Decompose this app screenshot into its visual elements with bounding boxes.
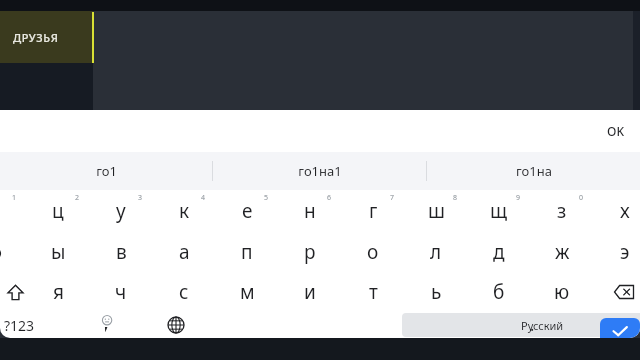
- button[interactable]: ш: [410, 190, 462, 232]
- staticText: го1на: [516, 162, 552, 180]
- staticText: 8: [453, 193, 458, 203]
- staticText: OK: [607, 123, 624, 139]
- staticText: ц: [52, 198, 64, 224]
- button[interactable]: ь: [410, 272, 462, 312]
- staticText: с: [179, 279, 189, 305]
- staticText: 3: [138, 193, 143, 203]
- button[interactable]: го1на1: [213, 152, 426, 190]
- button[interactable]: ы: [32, 232, 84, 272]
- staticText: ч: [115, 279, 127, 305]
- button[interactable]: о: [347, 232, 399, 272]
- button[interactable]: Shift: [0, 272, 36, 312]
- button[interactable]: д: [473, 232, 525, 272]
- button[interactable]: ф: [0, 232, 21, 272]
- staticText: ш: [428, 198, 445, 224]
- button[interactable]: я: [32, 272, 84, 312]
- staticText: го1на1: [298, 162, 342, 180]
- button[interactable]: х: [599, 190, 640, 232]
- staticText: а: [179, 239, 190, 265]
- button[interactable]: Русский: [402, 313, 640, 337]
- button[interactable]: т: [347, 272, 399, 312]
- button[interactable]: н: [284, 190, 336, 232]
- staticText: р: [304, 239, 316, 265]
- staticText: ж: [555, 239, 570, 265]
- button[interactable]: з: [536, 190, 588, 232]
- staticText: щ: [490, 198, 508, 224]
- staticText: ю: [554, 279, 570, 305]
- button[interactable]: е: [221, 190, 273, 232]
- staticText: го1: [96, 162, 117, 180]
- button[interactable]: п: [221, 232, 273, 272]
- button[interactable]: к: [158, 190, 210, 232]
- button[interactable]: ДРУЗЬЯ: [0, 11, 93, 63]
- staticText: 0: [579, 193, 584, 203]
- staticText: 1: [12, 193, 17, 203]
- button[interactable]: Comma and emoji: [86, 312, 126, 338]
- staticText: м: [240, 279, 255, 305]
- staticText: 2: [75, 193, 80, 203]
- staticText: 4: [201, 193, 206, 203]
- staticText: н: [304, 198, 316, 224]
- button[interactable]: м: [221, 272, 273, 312]
- staticText: з: [557, 198, 567, 224]
- staticText: я: [53, 279, 64, 305]
- staticText: т: [369, 279, 378, 305]
- staticText: Русский: [521, 318, 564, 333]
- button[interactable]: го1: [0, 152, 212, 190]
- staticText: в: [116, 239, 127, 265]
- button[interactable]: OK: [599, 117, 632, 145]
- staticText: ы: [51, 239, 66, 265]
- staticText: о: [367, 239, 379, 265]
- staticText: к: [179, 198, 190, 224]
- button[interactable]: и: [284, 272, 336, 312]
- button[interactable]: в: [95, 232, 147, 272]
- staticText: л: [430, 239, 442, 265]
- button[interactable]: ж: [536, 232, 588, 272]
- staticText: п: [241, 239, 253, 265]
- button[interactable]: го1на: [427, 152, 640, 190]
- staticText: ь: [431, 279, 442, 305]
- button[interactable]: ю: [536, 272, 588, 312]
- button[interactable]: щ: [473, 190, 525, 232]
- staticText: ДРУЗЬЯ: [13, 30, 59, 45]
- button[interactable]: с: [158, 272, 210, 312]
- staticText: г: [369, 198, 378, 224]
- button[interactable]: р: [284, 232, 336, 272]
- staticText: ф: [0, 239, 3, 265]
- button[interactable]: у: [95, 190, 147, 232]
- staticText: 6: [327, 193, 332, 203]
- button[interactable]: ц: [32, 190, 84, 232]
- staticText: .: [530, 314, 535, 336]
- button[interactable]: ?123: [0, 312, 48, 338]
- staticText: б: [493, 279, 505, 305]
- button[interactable]: л: [410, 232, 462, 272]
- staticText: х: [620, 198, 630, 224]
- staticText: и: [304, 279, 316, 305]
- button[interactable]: Backspace: [602, 272, 640, 312]
- staticText: 5: [264, 193, 269, 203]
- staticText: у: [116, 198, 126, 224]
- staticText: 9: [516, 193, 521, 203]
- staticText: е: [242, 198, 253, 224]
- button[interactable]: э: [599, 232, 640, 272]
- button[interactable]: ч: [95, 272, 147, 312]
- button[interactable]: б: [473, 272, 525, 312]
- button[interactable]: .: [512, 312, 552, 338]
- button[interactable]: г: [347, 190, 399, 232]
- staticText: э: [620, 239, 630, 265]
- button[interactable]: Enter: [600, 318, 640, 338]
- button[interactable]: й: [0, 190, 21, 232]
- staticText: д: [493, 239, 505, 265]
- staticText: 7: [390, 193, 395, 203]
- button[interactable]: Change language: [156, 312, 196, 338]
- staticText: ?123: [4, 316, 35, 335]
- button[interactable]: а: [158, 232, 210, 272]
